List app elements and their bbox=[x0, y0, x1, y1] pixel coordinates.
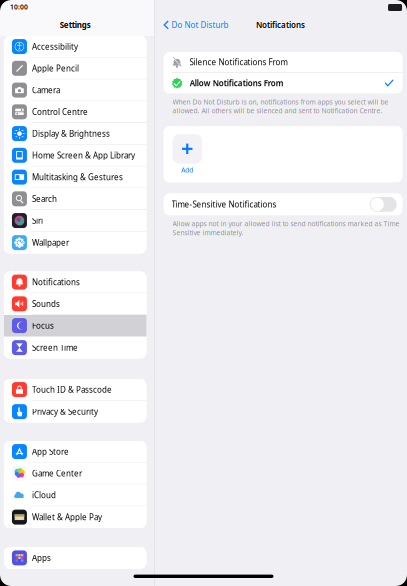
button[interactable]: Apps bbox=[4, 547, 146, 569]
staticText: Notifications bbox=[256, 20, 305, 30]
staticText: Allow Notifications From bbox=[190, 78, 284, 88]
staticText: Silence Notifications From bbox=[189, 57, 287, 67]
staticText: When Do Not Disturb is on, notifications… bbox=[172, 97, 388, 115]
button[interactable]: Add bbox=[172, 134, 202, 174]
button[interactable]: Search bbox=[4, 188, 146, 210]
staticText: Camera bbox=[32, 85, 60, 95]
button[interactable]: Wallet & Apple Pay bbox=[4, 506, 146, 528]
button[interactable]: Do Not Disturb bbox=[163, 20, 228, 30]
staticText: Sounds bbox=[32, 298, 60, 309]
staticText: Focus bbox=[32, 320, 54, 331]
button[interactable]: Sounds bbox=[4, 293, 146, 315]
button[interactable]: Accessibility bbox=[4, 36, 146, 58]
staticText: iCloud bbox=[32, 490, 56, 500]
staticText: Allow apps not in your allowed list to s… bbox=[172, 219, 399, 237]
button[interactable]: Privacy & Security bbox=[4, 401, 146, 423]
staticText: Add bbox=[181, 165, 193, 174]
button[interactable]: Focus bbox=[4, 315, 146, 337]
staticText: Touch ID & Passcode bbox=[32, 384, 112, 395]
button[interactable]: Screen Time bbox=[4, 337, 146, 359]
button[interactable]: Touch ID & Passcode bbox=[4, 379, 146, 401]
button[interactable]: Silence Notifications From bbox=[163, 52, 402, 72]
button[interactable]: Control Centre bbox=[4, 101, 146, 123]
staticText: Home Screen & App Library bbox=[32, 150, 135, 161]
staticText: Settings bbox=[60, 20, 91, 30]
button[interactable]: Time-Sensitive Notifications bbox=[370, 197, 397, 212]
staticText: Control Centre bbox=[32, 106, 88, 117]
button[interactable]: Apple Pencil bbox=[4, 58, 146, 80]
button[interactable]: App Store bbox=[4, 441, 146, 463]
button[interactable]: Allow Notifications From bbox=[163, 73, 402, 93]
button[interactable]: Game Center bbox=[4, 463, 146, 485]
button[interactable]: Notifications bbox=[4, 271, 146, 293]
staticText: Multitasking & Gestures bbox=[32, 172, 123, 182]
staticText: Wallet & Apple Pay bbox=[32, 512, 102, 522]
staticText: Time-Sensitive Notifications bbox=[171, 199, 276, 210]
button[interactable]: iCloud bbox=[4, 484, 146, 506]
button[interactable]: Display & Brightness bbox=[4, 123, 146, 145]
staticText: Privacy & Security bbox=[32, 406, 98, 417]
staticText: Notifications bbox=[32, 277, 80, 287]
staticText: Display & Brightness bbox=[32, 128, 110, 139]
staticText: Apple Pencil bbox=[32, 63, 79, 74]
staticText: Game Center bbox=[32, 468, 82, 479]
staticText: Screen Time bbox=[32, 342, 78, 353]
staticText: App Store bbox=[32, 446, 69, 457]
button[interactable]: Multitasking & Gestures bbox=[4, 166, 146, 188]
staticText: 10:00 bbox=[10, 3, 28, 11]
staticText: Wallpaper bbox=[32, 237, 69, 248]
staticText: Apps bbox=[32, 553, 51, 563]
staticText: Siri bbox=[32, 215, 43, 226]
staticText: Search bbox=[32, 193, 57, 204]
staticText: Do Not Disturb bbox=[171, 20, 228, 30]
staticText: Accessibility bbox=[32, 41, 78, 52]
button[interactable]: Wallpaper bbox=[4, 232, 146, 254]
button[interactable]: Siri bbox=[4, 210, 146, 232]
button[interactable]: Home Screen & App Library bbox=[4, 145, 146, 167]
button[interactable]: Camera bbox=[4, 79, 146, 101]
